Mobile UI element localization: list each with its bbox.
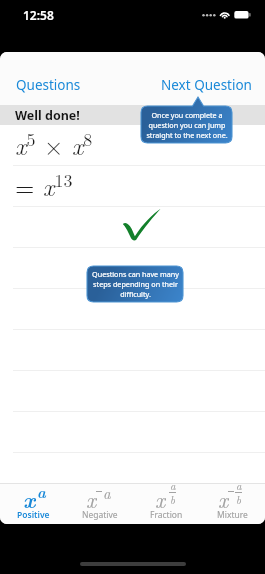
staticText: Negative <box>82 509 118 521</box>
staticText: difficulty. <box>120 289 151 299</box>
staticText: x5 × x8 <box>15 126 93 162</box>
staticText: Questions can have many <box>92 269 179 279</box>
staticText: a <box>170 478 176 494</box>
staticText: Fraction <box>150 509 183 521</box>
button[interactable]: x <box>0 484 67 524</box>
staticText: a <box>103 482 111 503</box>
button[interactable]: x <box>199 484 265 524</box>
staticText: x <box>155 483 166 513</box>
staticText: straight to the next one. <box>146 130 228 140</box>
staticText: b <box>170 492 176 505</box>
staticText: x <box>218 483 229 513</box>
staticText: steps depending on their <box>93 279 178 289</box>
staticText: Questions <box>16 76 81 94</box>
staticText: Next Question <box>161 76 252 94</box>
staticText: Well done! <box>15 107 80 124</box>
button[interactable]: x <box>67 484 133 524</box>
button[interactable]: Questions <box>0 69 97 101</box>
button[interactable]: Next Question <box>148 69 265 101</box>
staticText: Mixture <box>217 509 248 521</box>
staticText: a <box>236 478 242 494</box>
staticText: x <box>86 483 97 513</box>
staticText: Once you complete a <box>151 110 223 120</box>
staticText: question you can jump <box>148 120 226 130</box>
staticText: x <box>23 483 36 513</box>
staticText: a <box>37 481 46 503</box>
button[interactable]: x <box>133 484 199 524</box>
staticText: 12:58 <box>23 7 54 23</box>
staticText: Positive <box>17 509 50 521</box>
staticText: b <box>236 492 242 505</box>
staticText: = x13 <box>15 167 73 203</box>
